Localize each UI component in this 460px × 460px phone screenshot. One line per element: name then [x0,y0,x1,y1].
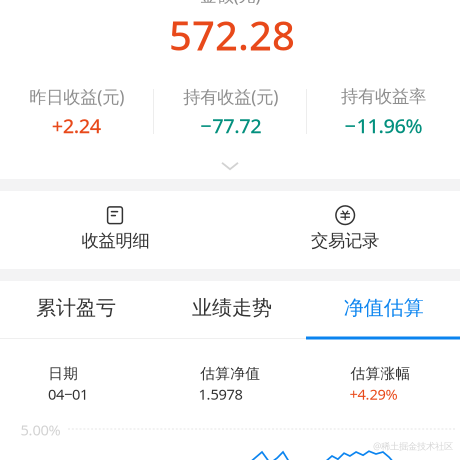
staticText: 5.00% [21,420,61,439]
staticText: +4.29% [350,384,398,404]
staticText: 累计盈亏 [36,296,116,320]
staticText: @稀土掘金技术社区 [373,440,453,452]
staticText: 日期 [48,364,78,382]
button[interactable]: 净值估算 [0,0,200,58]
staticText: 业绩走势 [192,296,272,320]
staticText: 估算涨幅 [351,364,411,382]
button[interactable]: 累计盈亏 [0,0,200,58]
staticText: 持有收益(元) [183,85,278,108]
button[interactable]: 业绩走势 [0,0,200,58]
staticText: +2.24 [52,112,101,139]
staticText: 交易记录 [311,230,379,251]
button[interactable]: 收益明细 [0,0,230,78]
staticText: 1.5978 [198,384,242,404]
staticText: 收益明细 [81,230,149,251]
staticText: 金额(元) [199,0,260,6]
staticText: −77.72 [200,112,261,139]
staticText: 净值估算 [344,296,424,320]
staticText: 持有收益率 [341,86,426,107]
staticText: 04−01 [48,384,88,404]
staticText: −11.96% [344,112,422,139]
staticText: 572.28 [169,8,295,61]
staticText: 估算净值 [200,364,260,382]
button[interactable]: 交易记录 [0,0,230,78]
staticText: 昨日收益(元) [29,85,124,108]
